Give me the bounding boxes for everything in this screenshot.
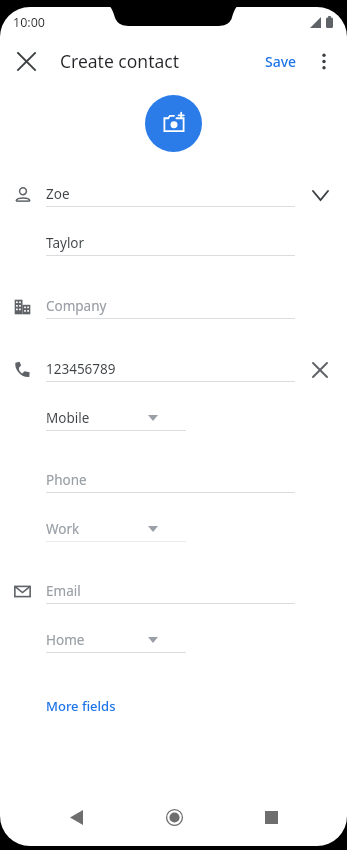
button[interactable]: Clear phone number: [303, 353, 337, 387]
button[interactable]: Phone: [0, 460, 347, 509]
staticText: Save: [265, 52, 297, 71]
staticText: Email: [46, 582, 81, 600]
button[interactable]: Company: [0, 286, 347, 335]
button[interactable]: Mobile: [0, 398, 347, 447]
staticText: Create contact: [60, 49, 180, 73]
button[interactable]: Home: [153, 796, 195, 838]
button[interactable]: Back: [55, 796, 97, 838]
staticText: Company: [46, 297, 107, 315]
staticText: Home: [46, 631, 85, 649]
button[interactable]: Email: [0, 571, 347, 620]
staticText: 10:00: [13, 14, 45, 31]
button[interactable]: Zoe: [0, 174, 347, 223]
staticText: Mobile: [46, 409, 90, 427]
staticText: 123456789: [46, 360, 116, 378]
button[interactable]: Taylor: [0, 223, 347, 272]
button[interactable]: 123456789: [0, 349, 347, 398]
staticText: Taylor: [46, 234, 85, 252]
button[interactable]: Close: [6, 41, 46, 81]
staticText: Zoe: [46, 185, 70, 203]
button[interactable]: Home: [0, 620, 347, 669]
button[interactable]: More options: [305, 42, 343, 80]
staticText: Work: [46, 520, 80, 538]
button[interactable]: More fields: [40, 692, 122, 720]
button[interactable]: Save: [259, 46, 303, 77]
button[interactable]: Recent apps: [250, 796, 292, 838]
button[interactable]: Work: [0, 509, 347, 558]
button[interactable]: Expand name fields: [303, 178, 337, 212]
staticText: Phone: [46, 471, 87, 489]
staticText: More fields: [46, 697, 116, 715]
button[interactable]: Add photo: [145, 95, 202, 152]
